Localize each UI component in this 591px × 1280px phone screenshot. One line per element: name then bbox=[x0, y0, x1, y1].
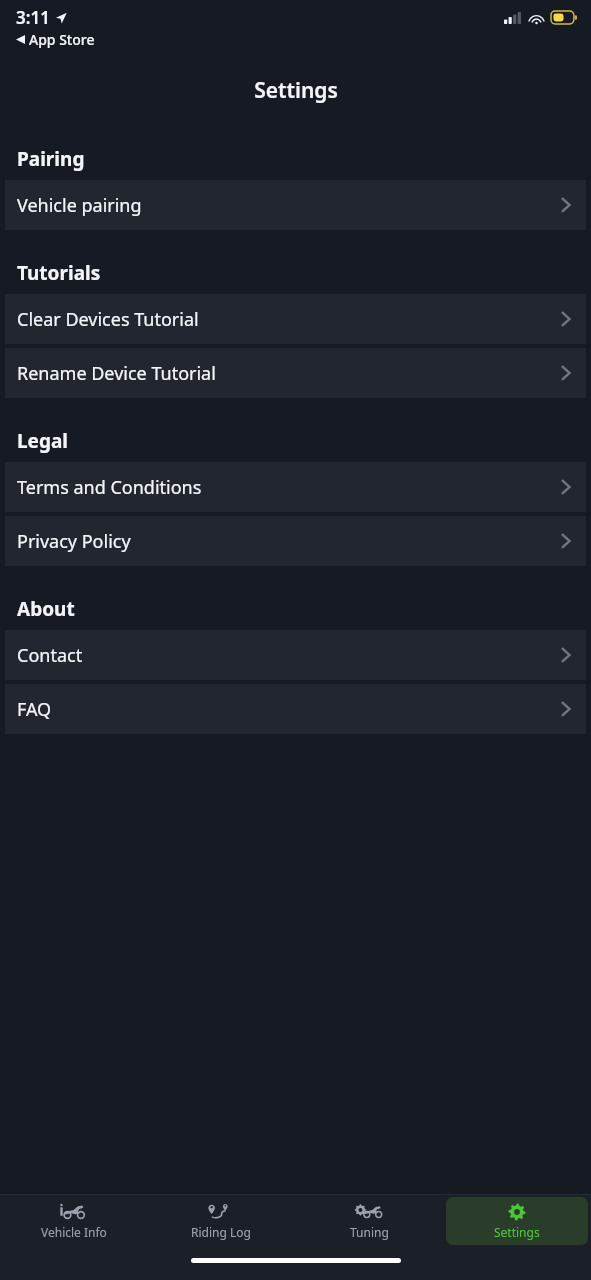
button[interactable]: Settings bbox=[446, 1197, 588, 1245]
staticText: FAQ bbox=[17, 697, 52, 722]
button[interactable]: Privacy Policy bbox=[5, 516, 586, 566]
staticText: Riding Log bbox=[191, 1224, 251, 1240]
staticText: App Store bbox=[29, 30, 95, 49]
staticText: Vehicle Info bbox=[41, 1224, 107, 1240]
staticText: Rename Device Tutorial bbox=[17, 361, 216, 386]
staticText: Pairing bbox=[17, 146, 85, 172]
button[interactable]: Clear Devices Tutorial bbox=[5, 294, 586, 344]
button[interactable]: Vehicle Info bbox=[3, 1197, 144, 1245]
staticText: Clear Devices Tutorial bbox=[17, 307, 199, 332]
staticText: About bbox=[17, 596, 75, 622]
staticText: Tutorials bbox=[17, 260, 101, 286]
button[interactable]: Vehicle pairing bbox=[5, 180, 586, 230]
button[interactable]: Terms and Conditions bbox=[5, 462, 586, 512]
button[interactable]: FAQ bbox=[5, 684, 586, 734]
staticText: Legal bbox=[17, 428, 69, 454]
button[interactable]: Rename Device Tutorial bbox=[5, 348, 586, 398]
staticText: Terms and Conditions bbox=[17, 475, 202, 500]
staticText: Settings bbox=[494, 1224, 540, 1240]
staticText: Vehicle pairing bbox=[17, 193, 142, 218]
staticText: Privacy Policy bbox=[17, 529, 131, 554]
button[interactable]: Riding Log bbox=[150, 1197, 292, 1245]
staticText: Contact bbox=[17, 643, 83, 668]
staticText: 3:11 bbox=[16, 6, 50, 29]
button[interactable]: Contact bbox=[5, 630, 586, 680]
staticText: Tuning bbox=[350, 1224, 389, 1240]
staticText: Settings bbox=[254, 76, 338, 105]
button[interactable]: Tuning bbox=[298, 1197, 440, 1245]
